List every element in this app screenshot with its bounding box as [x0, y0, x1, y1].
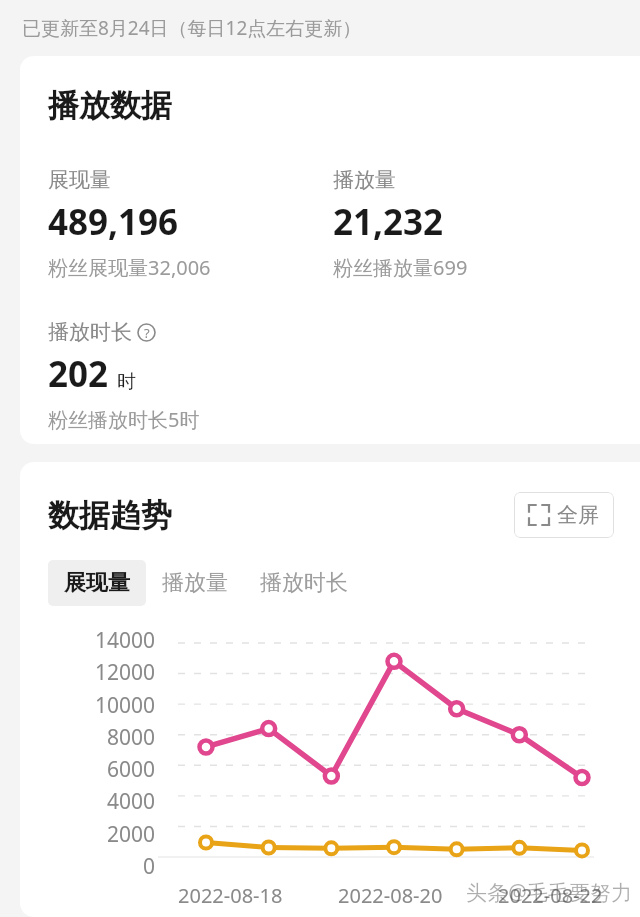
staticText: 8000 — [106, 723, 155, 747]
staticText: 10000 — [94, 691, 155, 715]
staticText: 粉丝展现量32,006 — [48, 254, 211, 281]
staticText: 展现量 — [64, 569, 130, 597]
staticText: 14000 — [94, 626, 155, 650]
staticText: 播放量 — [162, 569, 228, 597]
staticText: 粉丝播放时长5时 — [48, 406, 200, 433]
staticText: 播放数据 — [48, 86, 172, 125]
staticText: 2022-08-20 — [338, 882, 443, 909]
staticText: 时 — [117, 370, 136, 394]
staticText: 播放量 — [333, 167, 396, 193]
staticText: 6000 — [106, 755, 155, 779]
staticText: 489,196 — [48, 198, 179, 246]
button[interactable]: 帮助 — [137, 323, 156, 342]
staticText: 2022-08-22 — [498, 882, 603, 909]
button[interactable]: 播放量 — [146, 560, 244, 606]
staticText: 2000 — [106, 820, 155, 844]
staticText: 数据趋势 — [48, 496, 172, 535]
staticText: ? — [144, 324, 150, 342]
staticText: 全屏 — [557, 502, 599, 528]
staticText: 已更新至8月24日（每日12点左右更新） — [22, 15, 362, 41]
button[interactable]: 全屏 — [514, 492, 614, 538]
staticText: 2022-08-18 — [178, 882, 283, 909]
button[interactable]: 展现量 — [48, 560, 146, 606]
staticText: 粉丝播放量699 — [333, 254, 468, 281]
staticText: 播放时长 — [260, 569, 348, 597]
staticText: 21,232 — [333, 198, 444, 246]
staticText: 头条@毛毛要努力 — [466, 878, 632, 907]
staticText: 4000 — [106, 787, 155, 811]
staticText: 12000 — [94, 658, 155, 682]
staticText: 展现量 — [48, 167, 111, 193]
staticText: 0 — [142, 852, 155, 876]
staticText: 202 — [48, 350, 109, 398]
button[interactable]: 播放时长 — [244, 560, 364, 606]
staticText: 播放时长 — [48, 319, 132, 345]
